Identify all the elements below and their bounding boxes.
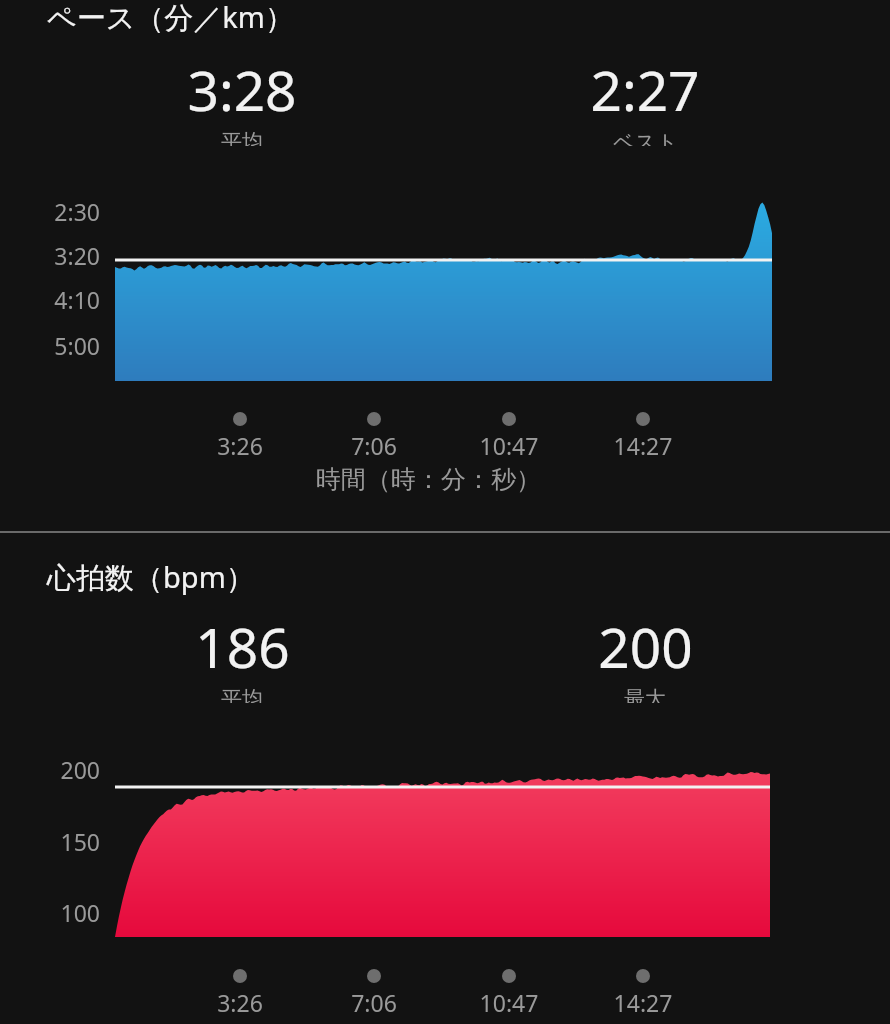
staticText: 14:27: [593, 430, 693, 460]
staticText: 5:00: [38, 330, 100, 360]
staticText: 186: [195, 609, 290, 684]
staticText: 時間（時：分：秒）: [316, 464, 541, 495]
staticText: 最大: [624, 686, 666, 703]
button[interactable]: 心拍数（bpm）: [0, 533, 890, 1024]
staticText: 2:27: [590, 52, 700, 127]
staticText: 平均: [221, 129, 263, 146]
staticText: 3:28: [187, 52, 297, 127]
staticText: 7:06: [324, 987, 424, 1017]
staticText: 平均: [221, 686, 263, 703]
staticText: 10:47: [459, 430, 559, 460]
staticText: 3:20: [38, 240, 100, 270]
staticText: 150: [38, 826, 100, 856]
staticText: ペース（分／km）: [47, 0, 294, 37]
staticText: 3:26: [190, 430, 290, 460]
staticText: 200: [38, 754, 100, 784]
staticText: 100: [38, 897, 100, 927]
staticText: ベスト: [613, 129, 678, 146]
button[interactable]: ペース（分／km）: [0, 0, 890, 531]
staticText: 14:27: [593, 987, 693, 1017]
staticText: 2:30: [38, 196, 100, 226]
staticText: 心拍数（bpm）: [47, 557, 255, 597]
staticText: 7:06: [324, 430, 424, 460]
staticText: 3:26: [190, 987, 290, 1017]
staticText: 200: [598, 609, 693, 684]
staticText: 10:47: [459, 987, 559, 1017]
staticText: 4:10: [38, 284, 100, 314]
